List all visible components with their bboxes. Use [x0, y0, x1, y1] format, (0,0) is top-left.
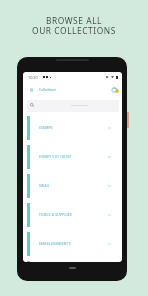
button[interactable] — [23, 261, 122, 262]
button[interactable]: EMBELLISHMENTS — [23, 232, 122, 261]
staticText: STAMPS — [39, 125, 53, 129]
staticText: BROWSE ALL OUR COLLECTIONS — [32, 15, 116, 36]
staticText: TOOLS & SUPPLIES — [39, 212, 72, 216]
button[interactable]: HONEY CUT (DIES) — [23, 145, 122, 174]
button[interactable]: SWAG — [23, 174, 122, 203]
button[interactable]: Collections — [39, 87, 56, 91]
staticText: 10:30 — [28, 75, 38, 80]
button[interactable]: Open navigation menu — [27, 85, 36, 94]
staticText: Collections — [39, 87, 56, 91]
button[interactable]: Search products — [27, 100, 119, 112]
staticText: EMBELLISHMENTS — [39, 241, 71, 245]
button[interactable]: Shopping bag — [107, 83, 119, 95]
button[interactable]: STAMPS — [23, 116, 122, 145]
staticText: Search products — [71, 104, 88, 107]
staticText: 3 — [116, 89, 118, 93]
staticText: SWAG — [39, 183, 50, 187]
button[interactable]: TOOLS & SUPPLIES — [23, 203, 122, 232]
staticText: HONEY CUT (DIES) — [39, 154, 71, 158]
